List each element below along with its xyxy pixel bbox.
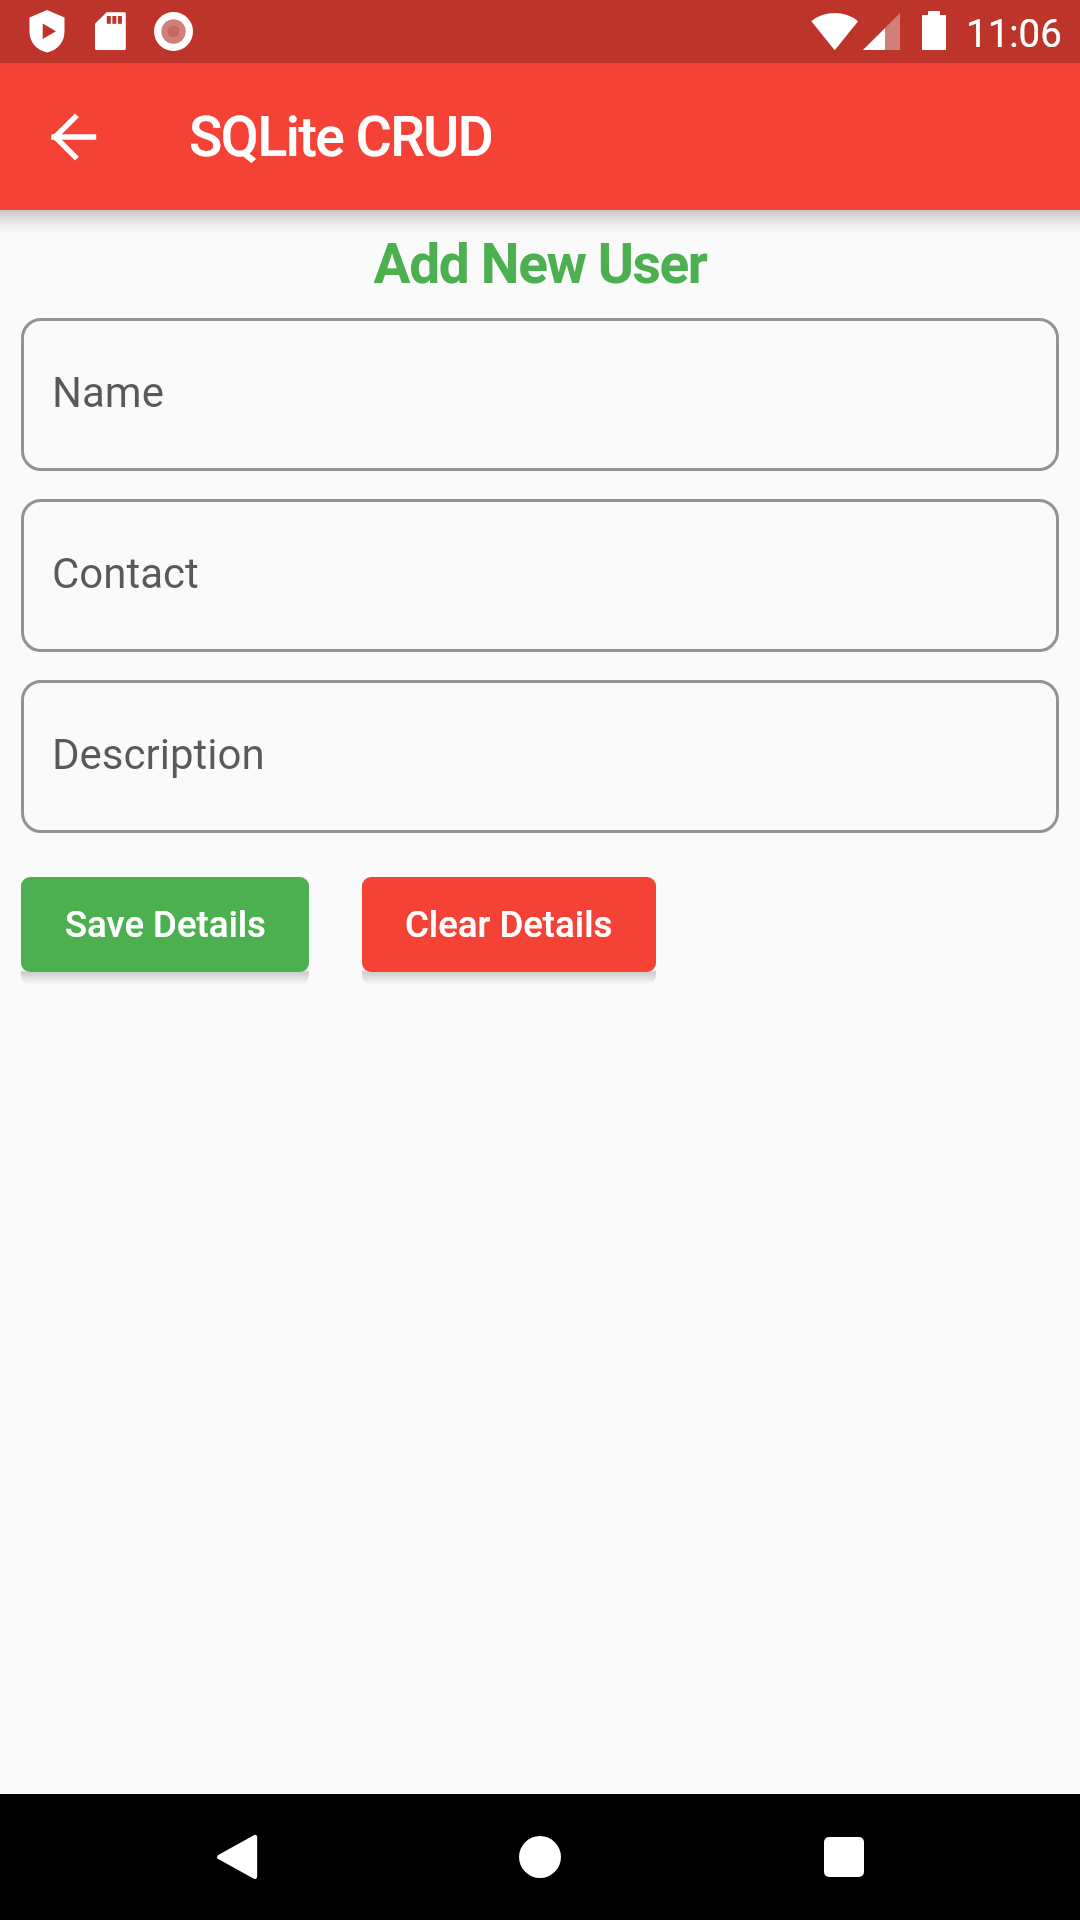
button[interactable]: Recent apps bbox=[789, 1802, 899, 1912]
button[interactable]: Clear Details bbox=[362, 877, 656, 972]
button[interactable]: Navigate up bbox=[26, 89, 122, 185]
staticText: Description bbox=[52, 730, 265, 779]
button[interactable]: Description bbox=[21, 680, 1059, 833]
button[interactable]: Save Details bbox=[21, 877, 309, 972]
button[interactable]: Home bbox=[485, 1802, 595, 1912]
staticText: Name bbox=[52, 368, 164, 417]
staticText: Contact bbox=[52, 549, 199, 598]
button[interactable]: Name bbox=[21, 318, 1059, 471]
staticText: SQLite CRUD bbox=[189, 105, 493, 169]
staticText: Save Details bbox=[65, 903, 266, 946]
button[interactable]: Back bbox=[181, 1802, 291, 1912]
button[interactable]: Contact bbox=[21, 499, 1059, 652]
staticText: Clear Details bbox=[405, 903, 613, 946]
staticText: 11:06 bbox=[966, 11, 1062, 56]
staticText: Add New User bbox=[0, 232, 1080, 296]
